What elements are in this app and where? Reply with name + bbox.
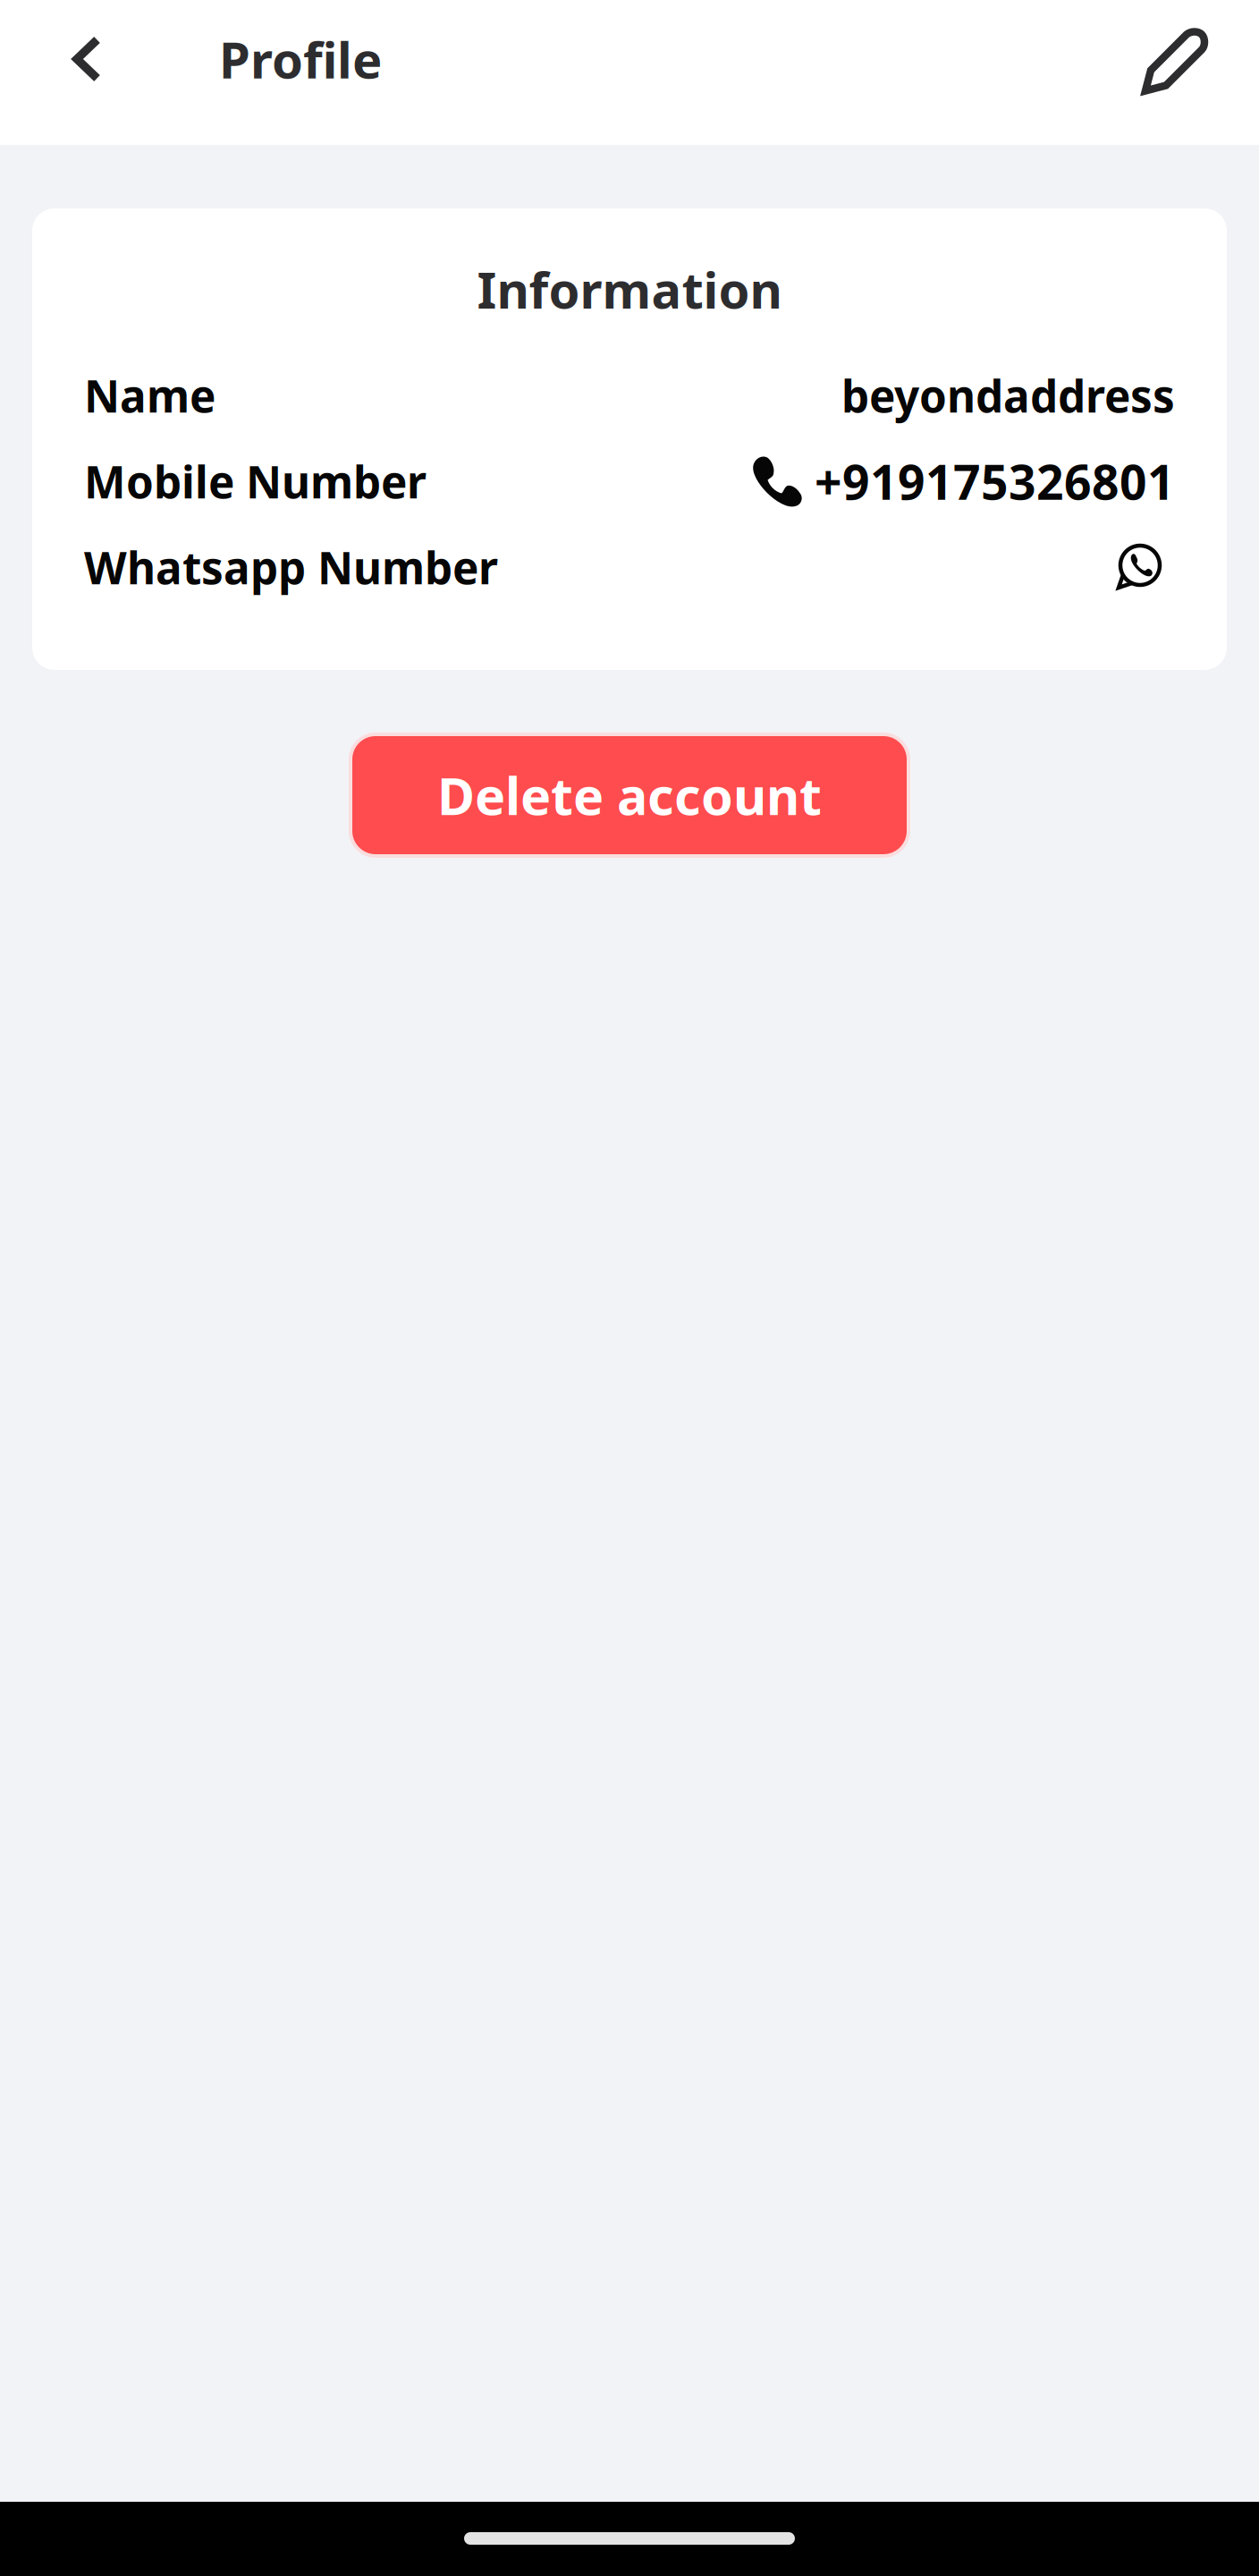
button[interactable]: +919175326801 — [748, 450, 1175, 513]
staticText: Profile — [219, 26, 382, 92]
button[interactable]: Edit — [1132, 13, 1222, 106]
button[interactable]: Open WhatsApp — [1113, 541, 1175, 593]
staticText: +919175326801 — [815, 450, 1175, 513]
staticText: Name — [84, 366, 215, 425]
button[interactable]: Profile — [122, 13, 400, 106]
button[interactable]: Back — [54, 13, 122, 106]
staticText: Whatsapp Number — [84, 538, 498, 596]
button[interactable]: Delete account — [349, 733, 910, 858]
staticText: Mobile Number — [84, 452, 427, 510]
staticText: Delete account — [437, 761, 822, 829]
staticText: beyondaddress — [841, 366, 1175, 425]
staticText: Information — [477, 256, 782, 322]
